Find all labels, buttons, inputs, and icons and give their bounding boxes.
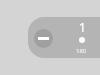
button[interactable]: Decrease bbox=[34, 29, 53, 48]
button[interactable] bbox=[28, 17, 100, 58]
staticText: 1 bbox=[79, 19, 86, 33]
staticText: 180 bbox=[76, 47, 87, 54]
